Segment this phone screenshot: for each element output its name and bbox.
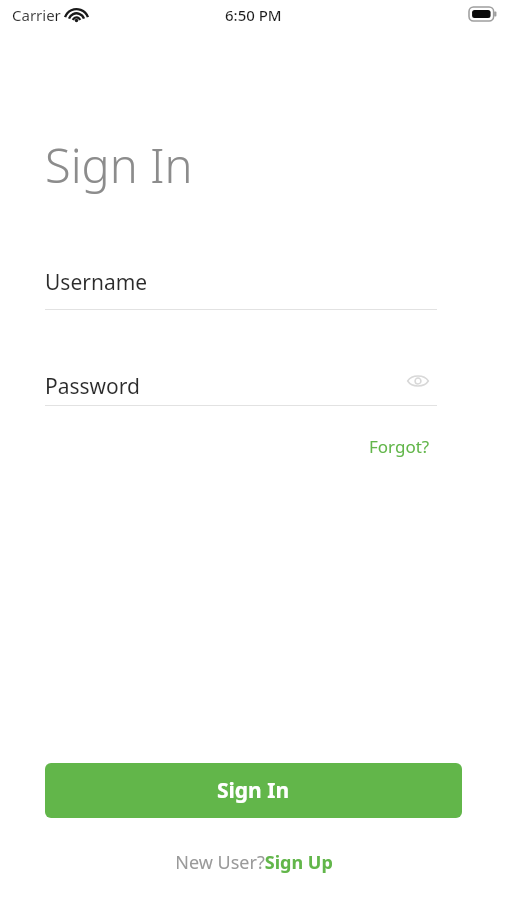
button[interactable]: Forgot?	[369, 435, 430, 458]
button[interactable]: Show password	[400, 363, 436, 399]
staticText: Carrier	[12, 5, 61, 25]
button[interactable]: New User?Sign Up	[167, 846, 341, 879]
staticText: 6:50 PM	[225, 5, 282, 25]
button[interactable]: Sign In	[45, 763, 462, 818]
staticText: Sign In	[45, 133, 193, 197]
staticText: New User?Sign Up	[175, 850, 333, 875]
staticText: Sign In	[217, 776, 290, 805]
staticText: Password	[45, 372, 140, 401]
staticText: Forgot?	[369, 435, 430, 458]
staticText: Username	[45, 268, 148, 297]
